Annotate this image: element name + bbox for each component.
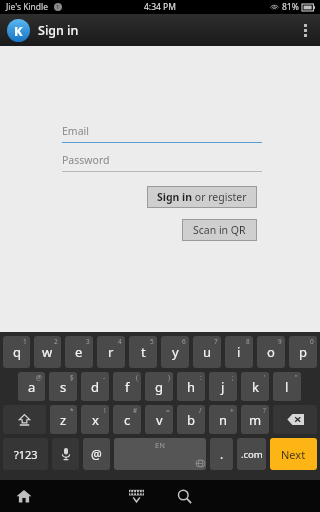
button[interactable]: p <box>289 336 317 368</box>
staticText: ? <box>263 406 266 415</box>
staticText: j <box>221 378 225 396</box>
staticText: i <box>237 343 241 361</box>
button[interactable]: Scan in QR <box>182 219 257 241</box>
button[interactable]: b <box>177 405 205 434</box>
staticText: 4:34 PM <box>144 1 176 13</box>
staticText: ; <box>232 373 234 382</box>
staticText: " <box>295 373 298 382</box>
staticText: l <box>285 378 289 396</box>
button[interactable]: @ <box>83 438 110 470</box>
staticText: w <box>42 343 53 361</box>
button[interactable]: Home <box>6 480 42 512</box>
button[interactable]: ?123 <box>3 438 48 470</box>
staticText: a <box>28 378 36 396</box>
staticText: + <box>230 406 234 415</box>
button[interactable]: y <box>161 336 189 368</box>
staticText: ( <box>136 373 138 382</box>
staticText: Jie's Kindle <box>6 1 49 13</box>
button[interactable]: Next <box>270 438 317 470</box>
button[interactable]: o <box>257 336 285 368</box>
button[interactable]: Backspace <box>273 405 317 434</box>
button[interactable]: x <box>81 405 109 434</box>
staticText: x <box>92 411 99 429</box>
button[interactable]: . <box>210 438 233 470</box>
staticText: d <box>91 378 99 396</box>
staticText: 1 <box>23 337 27 346</box>
staticText: 1 <box>56 3 60 11</box>
button[interactable]: r <box>97 336 125 368</box>
staticText: y <box>172 343 179 361</box>
staticText: . <box>220 446 224 462</box>
staticText: * <box>70 406 74 415</box>
staticText: u <box>203 343 212 361</box>
button[interactable]: c <box>113 405 141 434</box>
staticText: ' <box>264 373 266 382</box>
button[interactable]: l <box>273 372 301 401</box>
staticText: 5 <box>150 337 154 346</box>
staticText: # <box>133 406 138 415</box>
staticText: v <box>156 411 163 429</box>
staticText: k <box>252 378 259 396</box>
button[interactable]: f <box>113 372 141 401</box>
button[interactable]: h <box>177 372 205 401</box>
staticText: t <box>141 343 146 361</box>
button[interactable]: Hide keyboard <box>118 480 154 512</box>
button[interactable]: a <box>18 372 45 401</box>
button[interactable]: Space <box>114 438 206 470</box>
staticText: e <box>75 343 83 361</box>
staticText: - <box>103 373 106 382</box>
button[interactable]: k <box>241 372 269 401</box>
staticText: ) <box>168 373 170 382</box>
staticText: Scan in QR <box>193 223 246 237</box>
staticText: EN <box>155 440 165 450</box>
button[interactable]: t <box>129 336 157 368</box>
button[interactable]: j <box>209 372 237 401</box>
staticText: Password <box>62 153 110 167</box>
button[interactable]: n <box>209 405 237 434</box>
staticText: f <box>125 378 130 396</box>
button[interactable]: u <box>193 336 221 368</box>
staticText: 9 <box>278 337 282 346</box>
button[interactable]: .com <box>237 438 266 470</box>
staticText: .com <box>241 448 263 461</box>
staticText: Email <box>62 124 89 138</box>
staticText: K <box>14 22 23 40</box>
staticText: 8 <box>246 337 250 346</box>
button[interactable]: Sign in or register <box>147 186 257 208</box>
button[interactable]: m <box>241 405 269 434</box>
staticText: o <box>267 343 275 361</box>
button[interactable]: Search <box>166 480 202 512</box>
staticText: Sign in or register <box>157 190 247 204</box>
button[interactable]: e <box>65 336 93 368</box>
button[interactable]: d <box>81 372 109 401</box>
staticText: / <box>199 406 202 415</box>
button[interactable]: Voice input <box>52 438 79 470</box>
button[interactable]: s <box>49 372 77 401</box>
staticText: 0 <box>310 337 314 346</box>
button[interactable]: Email <box>62 124 262 143</box>
staticText: @ <box>91 446 102 462</box>
button[interactable]: Shift <box>3 405 46 434</box>
staticText: 7 <box>214 337 218 346</box>
button[interactable]: i <box>225 336 253 368</box>
button[interactable]: z <box>50 405 77 434</box>
staticText: ! <box>104 406 106 415</box>
button[interactable]: g <box>145 372 173 401</box>
button[interactable]: v <box>145 405 173 434</box>
staticText: 3 <box>86 337 90 346</box>
staticText: r <box>108 343 114 361</box>
button[interactable]: More options <box>290 14 320 46</box>
button[interactable]: Password <box>62 153 262 172</box>
staticText: h <box>187 378 196 396</box>
staticText: p <box>299 343 307 361</box>
button[interactable]: w <box>34 336 61 368</box>
staticText: g <box>155 378 163 396</box>
staticText: $ <box>70 373 74 382</box>
staticText: c <box>124 411 131 429</box>
staticText: 6 <box>182 337 186 346</box>
staticText: m <box>249 411 262 429</box>
button[interactable]: q <box>3 336 30 368</box>
staticText: z <box>60 411 67 429</box>
staticText: q <box>13 343 21 361</box>
staticText: 2 <box>54 337 58 346</box>
